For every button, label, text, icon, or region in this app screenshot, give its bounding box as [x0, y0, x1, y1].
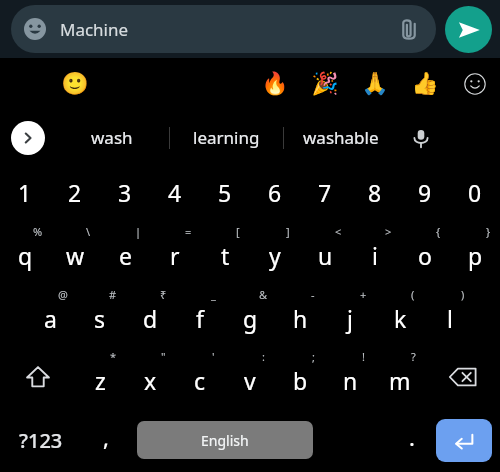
button[interactable]: y — [250, 220, 300, 283]
button[interactable]: . — [387, 408, 437, 472]
button[interactable]: s — [75, 283, 125, 345]
button[interactable]: u — [300, 220, 350, 283]
staticText: 8 — [368, 177, 382, 208]
button[interactable]: o — [400, 220, 450, 283]
staticText: ' — [212, 349, 215, 364]
button[interactable]: 5 — [200, 165, 250, 220]
staticText: ) — [461, 287, 465, 302]
button[interactable]: , — [80, 408, 132, 472]
staticText: * — [110, 349, 117, 364]
staticText: @ — [58, 287, 68, 302]
button[interactable]: m — [375, 345, 425, 408]
button[interactable]: 🎉 — [300, 58, 350, 110]
button[interactable]: k — [375, 283, 425, 345]
button[interactable]: f — [175, 283, 225, 345]
staticText: d — [143, 303, 158, 334]
staticText: u — [318, 240, 333, 271]
staticText: p — [468, 240, 483, 271]
button[interactable]: j — [325, 283, 375, 345]
button[interactable]: 👍 — [400, 58, 450, 110]
button[interactable]: b — [275, 345, 325, 408]
button[interactable]: 1 — [0, 165, 50, 220]
button[interactable]: Send — [445, 6, 492, 53]
button[interactable]: e — [100, 220, 150, 283]
button[interactable]: 🔥 — [250, 58, 300, 110]
staticText: 2 — [68, 177, 82, 208]
staticText: . — [409, 422, 415, 452]
button[interactable]: a — [25, 283, 75, 345]
button[interactable]: c — [175, 345, 225, 408]
staticText: { — [436, 224, 441, 239]
button[interactable]: Voice input — [397, 110, 445, 165]
staticText: 0 — [468, 177, 482, 208]
staticText: 🎉 — [311, 71, 339, 97]
button[interactable]: Emoji — [23, 17, 47, 41]
button[interactable]: w — [50, 220, 100, 283]
button[interactable]: wash — [55, 110, 169, 165]
button[interactable]: Shift — [0, 345, 75, 408]
button[interactable]: 3 — [100, 165, 150, 220]
button[interactable]: Attach — [394, 14, 424, 44]
button[interactable]: n — [325, 345, 375, 408]
staticText: " — [161, 349, 166, 364]
staticText: 1 — [18, 177, 32, 208]
button[interactable]: Backspace — [425, 345, 500, 408]
button[interactable]: h — [275, 283, 325, 345]
button[interactable]: t — [200, 220, 250, 283]
staticText: 9 — [418, 177, 432, 208]
button[interactable]: ?123 — [6, 408, 76, 472]
staticText: o — [418, 240, 432, 271]
button[interactable]: v — [225, 345, 275, 408]
button[interactable]: g — [225, 283, 275, 345]
button[interactable]: p — [450, 220, 500, 283]
staticText: e — [119, 240, 132, 271]
button[interactable]: learning — [170, 110, 283, 165]
button[interactable]: Enter — [436, 419, 492, 462]
button[interactable]: q — [0, 220, 50, 283]
button[interactable]: English — [137, 421, 313, 459]
button[interactable]: Emoji keyboard — [130, 408, 182, 472]
staticText: + — [360, 287, 367, 302]
button[interactable]: 9 — [400, 165, 450, 220]
button[interactable]: Emoji — [11, 5, 436, 53]
button[interactable]: 4 — [150, 165, 200, 220]
staticText: h — [293, 303, 308, 334]
button[interactable]: 🙏 — [350, 58, 400, 110]
staticText: q — [18, 240, 33, 271]
button[interactable]: i — [350, 220, 400, 283]
staticText: j — [347, 303, 353, 334]
staticText: # — [109, 287, 117, 302]
button[interactable]: 2 — [50, 165, 100, 220]
button[interactable]: 7 — [300, 165, 350, 220]
staticText: ; — [312, 349, 315, 364]
staticText: 🔥 — [261, 71, 289, 97]
button[interactable]: washable — [284, 110, 397, 165]
button[interactable]: z — [75, 345, 125, 408]
button[interactable]: Expand suggestions — [11, 121, 45, 155]
staticText: : — [262, 349, 265, 364]
staticText: c — [194, 365, 206, 396]
staticText: v — [244, 365, 256, 396]
button[interactable]: 6 — [250, 165, 300, 220]
button[interactable]: x — [125, 345, 175, 408]
button[interactable]: 🙂 — [50, 58, 100, 110]
staticText: | — [135, 224, 142, 239]
staticText: [ — [236, 224, 240, 239]
staticText: 🙂 — [61, 71, 89, 97]
button[interactable]: 0 — [450, 165, 500, 220]
staticText: ( — [411, 287, 415, 302]
button[interactable]: l — [425, 283, 475, 345]
button[interactable]: d — [125, 283, 175, 345]
staticText: _ — [211, 287, 216, 302]
staticText: y — [269, 240, 281, 271]
button[interactable]: More emoji — [450, 58, 500, 110]
button[interactable]: r — [150, 220, 200, 283]
button[interactable]: 8 — [350, 165, 400, 220]
staticText: - — [311, 287, 315, 302]
